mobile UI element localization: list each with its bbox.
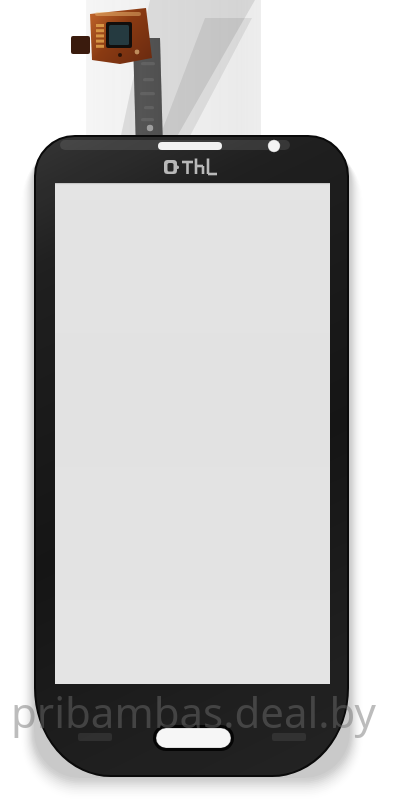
button[interactable]: ThL smartphone touch screen digitizer pr…: [0, 0, 400, 800]
